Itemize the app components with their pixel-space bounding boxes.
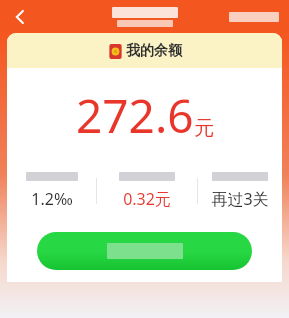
staticText: 再过3关 [211,188,269,210]
button[interactable]: More [227,10,281,24]
button[interactable]: 0.32元 [97,172,197,210]
staticText: 272.6 [76,84,194,147]
staticText: 0.32元 [123,188,171,210]
button[interactable]: 1.2‰ [7,172,96,210]
staticText: 元 [194,116,214,141]
button[interactable]: Back [6,3,34,31]
button[interactable] [37,232,252,270]
staticText: 我的余额 [126,42,182,60]
staticText: 1.2‰ [31,188,73,210]
button[interactable]: 再过3关 [198,172,282,210]
